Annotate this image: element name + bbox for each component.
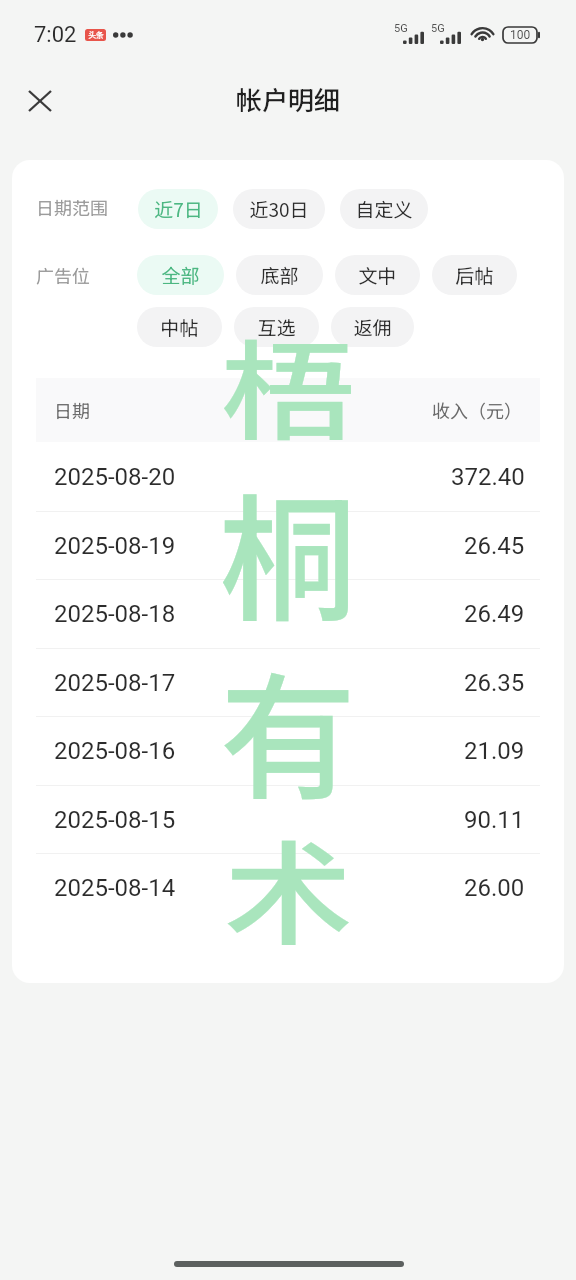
staticText: 5G — [394, 22, 408, 35]
staticText: 帐户明细 — [236, 80, 341, 118]
staticText: 全部 — [161, 261, 200, 289]
staticText: 21.09 — [464, 737, 525, 765]
staticText: 头条 — [88, 29, 104, 41]
button[interactable]: 底部 — [236, 255, 323, 295]
staticText: 有 — [220, 630, 356, 827]
staticText: 2025-08-14 — [54, 874, 176, 902]
button[interactable]: 2025-08-15 — [36, 785, 540, 854]
staticText: 中帖 — [160, 313, 199, 341]
staticText: 梧 — [220, 306, 357, 462]
button[interactable]: Close — [13, 74, 65, 126]
staticText: 2025-08-19 — [54, 532, 176, 560]
button[interactable]: 中帖 — [137, 307, 222, 347]
staticText: 2025-08-20 — [54, 463, 176, 491]
staticText: 广告位 — [36, 262, 90, 288]
button[interactable]: 近30日 — [233, 189, 325, 229]
button[interactable]: 返佣 — [331, 307, 414, 347]
button[interactable]: 全部 — [137, 255, 224, 295]
staticText: 2025-08-15 — [54, 806, 176, 834]
staticText: 桐 — [219, 451, 357, 649]
staticText: 互选 — [257, 313, 296, 341]
button[interactable]: 2025-08-18 — [36, 579, 540, 648]
staticText: 底部 — [260, 261, 299, 289]
button[interactable]: 文中 — [335, 255, 420, 295]
button[interactable]: 互选 — [234, 307, 319, 347]
button[interactable]: 2025-08-14 — [36, 853, 540, 922]
button[interactable]: 近7日 — [138, 189, 218, 229]
staticText: 文中 — [358, 261, 397, 289]
staticText: 日期范围 — [36, 194, 108, 220]
staticText: 2025-08-16 — [54, 737, 176, 765]
staticText: 26.45 — [464, 532, 525, 560]
staticText: 7:02 — [34, 22, 77, 48]
button[interactable]: 后帖 — [432, 255, 517, 295]
staticText: 26.00 — [464, 874, 525, 902]
staticText: 2025-08-17 — [54, 669, 176, 697]
staticText: 90.11 — [464, 806, 525, 834]
staticText: 100 — [510, 28, 531, 42]
staticText: 近7日 — [154, 195, 203, 223]
button[interactable]: 2025-08-16 — [36, 716, 540, 785]
staticText: 5G — [431, 22, 445, 35]
staticText: 日期 — [54, 397, 90, 423]
staticText: 2025-08-18 — [54, 600, 176, 628]
staticText: 26.49 — [464, 600, 525, 628]
button[interactable]: 2025-08-20 — [36, 442, 540, 511]
staticText: 自定义 — [355, 195, 413, 223]
staticText: 收入（元） — [432, 397, 522, 423]
button[interactable]: 2025-08-17 — [36, 648, 540, 717]
staticText: 后帖 — [455, 261, 494, 289]
button[interactable]: 2025-08-19 — [36, 511, 540, 580]
button[interactable]: 自定义 — [340, 189, 428, 229]
staticText: 术 — [224, 805, 353, 969]
staticText: 372.40 — [451, 463, 525, 491]
staticText: 近30日 — [249, 195, 309, 223]
staticText: 返佣 — [353, 313, 392, 341]
staticText: 26.35 — [464, 669, 525, 697]
